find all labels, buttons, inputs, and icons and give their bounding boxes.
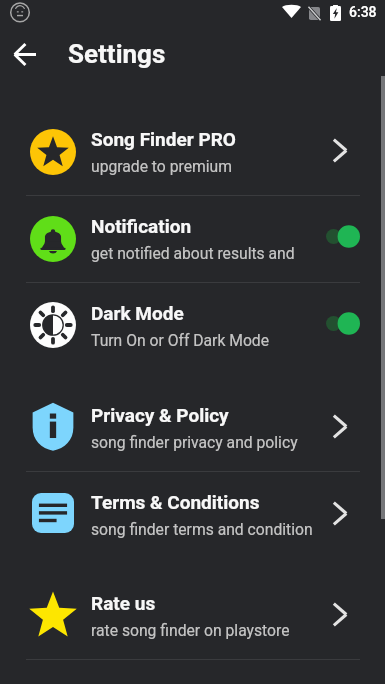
button[interactable]: Toggle bbox=[325, 308, 361, 344]
staticText: upgrade to premium bbox=[91, 157, 232, 175]
staticText: Rate us bbox=[91, 592, 156, 614]
staticText: Notification bbox=[91, 215, 192, 237]
button[interactable]: Toggle bbox=[325, 221, 361, 257]
staticText: rate song finder on playstore bbox=[91, 621, 290, 639]
staticText: Turn On or Off Dark Mode bbox=[91, 331, 270, 349]
staticText: Song Finder PRO bbox=[91, 128, 236, 150]
button[interactable]: Open bbox=[325, 598, 361, 634]
button[interactable]: Open bbox=[325, 134, 361, 170]
staticText: Terms & Conditions bbox=[91, 491, 260, 513]
button[interactable]: Rate us bbox=[0, 573, 385, 659]
button[interactable]: Open bbox=[325, 410, 361, 446]
button[interactable]: Dark Mode bbox=[0, 283, 385, 369]
button[interactable]: Back bbox=[6, 33, 44, 71]
staticText: get notified about results and bbox=[91, 244, 295, 262]
staticText: 6:38 bbox=[349, 4, 377, 20]
button[interactable]: Terms & Conditions bbox=[0, 472, 385, 558]
staticText: song finder privacy and policy bbox=[91, 433, 298, 451]
button[interactable]: Song Finder PRO bbox=[0, 109, 385, 195]
staticText: Privacy & Policy bbox=[91, 404, 229, 426]
button[interactable]: Open bbox=[325, 497, 361, 533]
staticText: Settings bbox=[68, 39, 166, 69]
staticText: song finder terms and condition bbox=[91, 520, 313, 538]
button[interactable]: Privacy & Policy bbox=[0, 385, 385, 471]
staticText: Dark Mode bbox=[91, 302, 184, 324]
button[interactable]: Notification bbox=[0, 196, 385, 282]
